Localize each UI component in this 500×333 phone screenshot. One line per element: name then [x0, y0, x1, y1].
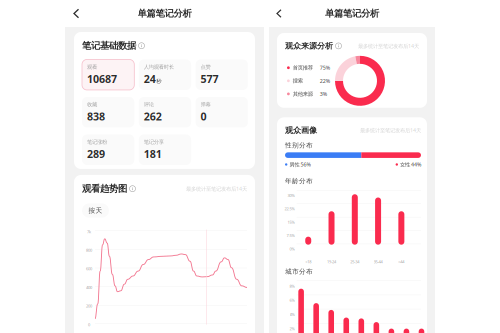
staticText: 笔记基础数据 — [82, 40, 136, 51]
staticText: 秒 — [156, 78, 161, 84]
staticText: 22.5% — [285, 206, 295, 211]
staticText: 评论 — [144, 101, 154, 108]
button[interactable]: Back — [269, 5, 286, 22]
staticText: >44 — [398, 259, 404, 264]
button[interactable]: 笔记涨粉 — [82, 134, 134, 165]
staticText: 收藏 — [87, 101, 97, 108]
staticText: 观众画像 — [285, 125, 317, 135]
staticText: 75% — [320, 64, 330, 71]
staticText: 性别分布 — [285, 141, 313, 149]
staticText: 24 — [144, 72, 156, 86]
staticText: 400 — [86, 285, 92, 290]
button[interactable]: 收藏 — [82, 97, 134, 127]
staticText: 弹幕 — [201, 101, 211, 108]
staticText: 8% — [290, 283, 295, 289]
staticText: 0 — [201, 109, 207, 123]
staticText: 按天 — [88, 206, 102, 215]
staticText: 35-44 — [374, 259, 383, 264]
staticText: 单篇笔记分析 — [137, 8, 191, 19]
staticText: 年龄分布 — [285, 177, 313, 185]
staticText: 男性 56% — [287, 161, 310, 168]
staticText: 城市分布 — [285, 267, 313, 276]
staticText: 0% — [290, 246, 295, 251]
staticText: 笔记分享 — [144, 139, 164, 145]
staticText: 最多统计至笔记发布后14天 — [186, 185, 247, 192]
staticText: 10687 — [87, 72, 117, 86]
staticText: 搜索 — [293, 78, 303, 84]
staticText: 181 — [144, 147, 162, 161]
staticText: <18 — [305, 259, 311, 264]
staticText: 观看趋势图 — [82, 183, 127, 194]
staticText: 最多统计至笔记发布后14天 — [358, 42, 419, 49]
staticText: 2% — [290, 326, 295, 331]
staticText: 800 — [86, 247, 92, 253]
staticText: 289 — [87, 147, 105, 161]
staticText: 15% — [288, 219, 295, 225]
staticText: 笔记涨粉 — [87, 139, 107, 145]
button[interactable]: 按天 — [82, 203, 109, 218]
staticText: 30% — [288, 193, 295, 198]
button[interactable]: Back — [65, 4, 83, 23]
staticText: 6% — [290, 298, 295, 303]
button[interactable]: 评论 — [139, 97, 191, 127]
staticText: 200 — [86, 303, 92, 309]
button[interactable]: 点赞 — [196, 59, 248, 90]
staticText: 7.5% — [287, 233, 295, 238]
staticText: 19-24 — [327, 259, 336, 264]
staticText: 0 — [88, 322, 90, 327]
staticText: 25-34 — [350, 259, 359, 264]
staticText: 点赞 — [201, 64, 211, 70]
staticText: 人均观看时长 — [144, 64, 174, 70]
staticText: 观众来源分析 — [285, 41, 333, 51]
staticText: 600 — [86, 266, 92, 271]
button[interactable]: 弹幕 — [196, 97, 248, 127]
staticText: 262 — [144, 109, 162, 123]
staticText: 单篇笔记分析 — [325, 8, 379, 19]
staticText: 7k — [87, 229, 91, 234]
button[interactable]: 笔记分享 — [139, 134, 191, 165]
staticText: 577 — [201, 72, 219, 86]
staticText: 女性 44% — [398, 161, 421, 168]
staticText: 首页推荐 — [293, 64, 313, 71]
staticText: 观看 — [87, 64, 97, 70]
button[interactable]: 人均观看时长 — [139, 59, 191, 90]
staticText: 4% — [290, 312, 295, 317]
staticText: 838 — [87, 109, 105, 123]
staticText: 其他来源 — [293, 91, 313, 97]
staticText: 3% — [320, 90, 327, 97]
button[interactable]: 观看 — [82, 59, 134, 90]
staticText: 22% — [320, 77, 330, 84]
staticText: 最多统计至笔记发布后14天 — [360, 127, 421, 134]
